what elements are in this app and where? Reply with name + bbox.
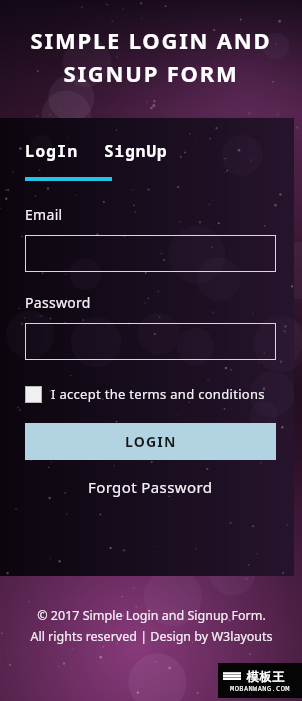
button[interactable]: LOGIN	[25, 423, 276, 460]
button[interactable]: I accept the terms and conditions	[25, 385, 276, 403]
staticText: Forgot Password	[88, 477, 213, 497]
staticText: Password	[25, 293, 91, 312]
button[interactable]	[25, 235, 276, 272]
other: MobanWang watermark	[218, 663, 302, 698]
staticText: © 2017 Simple Login and Signup Form. All…	[30, 607, 273, 645]
staticText: SIMPLE LOGIN AND SIGNUP FORM	[5, 25, 297, 88]
staticText: LOGIN	[125, 432, 177, 451]
button[interactable]	[25, 323, 276, 360]
staticText: Email	[25, 205, 63, 224]
button[interactable]: SignUp	[104, 140, 168, 162]
staticText: 模板王	[246, 669, 285, 684]
staticText: SignUp	[104, 140, 168, 162]
staticText: MOBANWANG.COM	[222, 684, 298, 694]
staticText: I accept the terms and conditions	[51, 385, 265, 403]
staticText: LogIn	[25, 140, 79, 162]
button[interactable]: Forgot Password	[88, 477, 213, 497]
button[interactable]: LogIn	[25, 140, 79, 162]
